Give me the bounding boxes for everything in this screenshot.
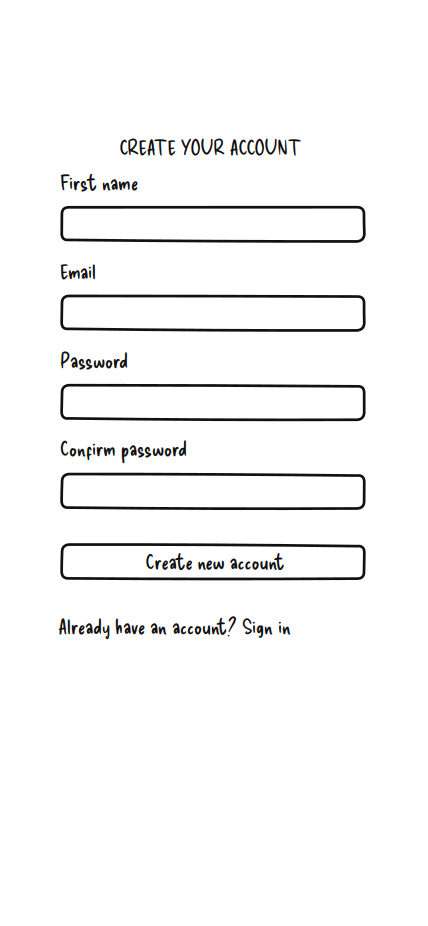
staticText: Create new account: [145, 548, 284, 574]
button[interactable]: Create new account: [60, 544, 365, 580]
button[interactable]: Email: [60, 295, 365, 331]
staticText: First name: [60, 169, 138, 195]
staticText: Confirm password: [60, 435, 187, 461]
button[interactable]: Password: [60, 384, 365, 420]
button[interactable]: Confirm password: [60, 473, 365, 509]
staticText: Already have an account? Sign in: [58, 613, 291, 639]
staticText: Password: [60, 347, 128, 373]
staticText: CREATE YOUR ACCOUNT: [119, 134, 297, 160]
button[interactable]: Already have an account? Sign in: [58, 613, 363, 639]
staticText: Email: [60, 258, 96, 284]
button[interactable]: First name: [60, 206, 365, 242]
